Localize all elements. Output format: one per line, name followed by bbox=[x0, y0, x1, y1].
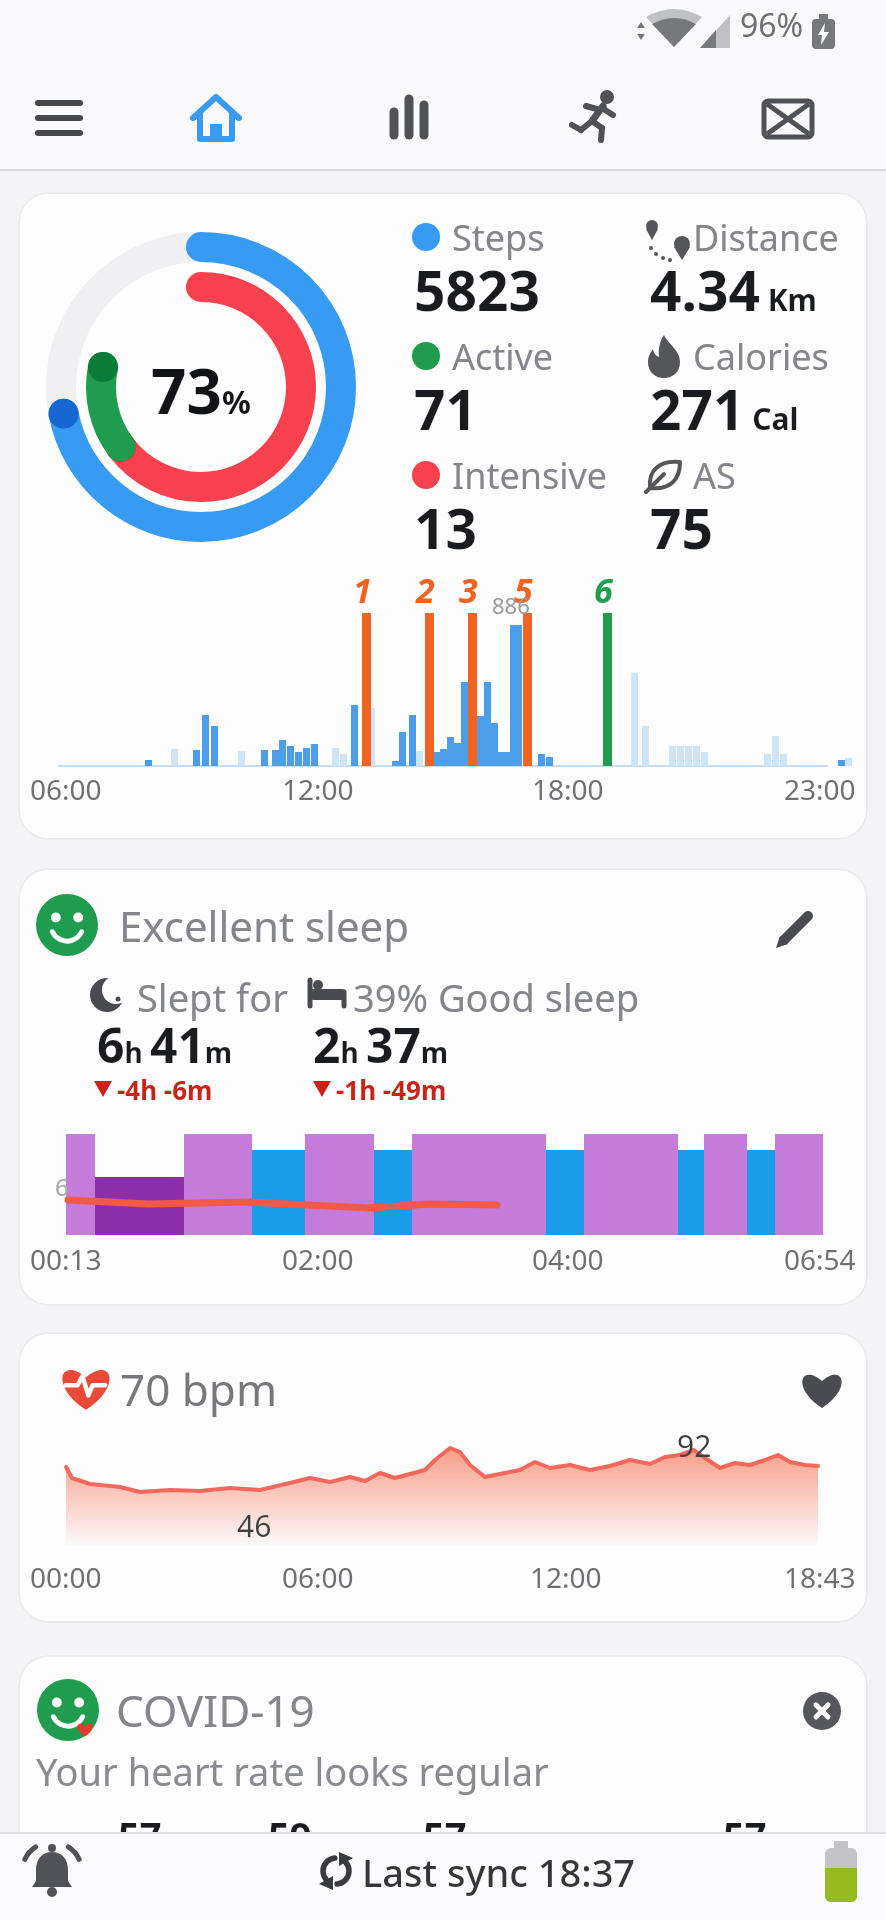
staticText: 70 bpm bbox=[120, 1359, 278, 1419]
button[interactable] bbox=[372, 83, 442, 153]
staticText: Calories bbox=[693, 332, 829, 381]
staticText: 886 bbox=[492, 590, 530, 620]
button[interactable] bbox=[788, 1357, 856, 1425]
staticText: 92 bbox=[677, 1425, 712, 1466]
staticText: 73% bbox=[151, 348, 251, 428]
staticText: 00:13 bbox=[30, 1240, 102, 1278]
button[interactable] bbox=[793, 1682, 851, 1740]
staticText: 02:00 bbox=[282, 1240, 354, 1278]
staticText: 18:00 bbox=[532, 770, 604, 808]
staticText: 2 bbox=[416, 567, 435, 613]
staticText: Slept for bbox=[137, 971, 288, 1023]
staticText: 1 bbox=[353, 567, 372, 613]
staticText: 00:00 bbox=[30, 1558, 102, 1596]
button[interactable] bbox=[25, 89, 95, 159]
staticText: 4.34 Km bbox=[650, 252, 817, 327]
staticText: -4h -6m bbox=[117, 1072, 213, 1107]
staticText: 23:00 bbox=[784, 770, 856, 808]
staticText: 59 bbox=[268, 1809, 312, 1832]
staticText: 46 bbox=[237, 1505, 272, 1546]
staticText: 04:00 bbox=[532, 1240, 604, 1278]
staticText: Intensive bbox=[452, 451, 608, 500]
staticText: 57 bbox=[118, 1809, 162, 1832]
staticText: Last sync 18:37 bbox=[362, 1846, 636, 1898]
staticText: COVID-19 bbox=[116, 1680, 315, 1740]
staticText: 71 bbox=[414, 371, 477, 446]
staticText: 39% Good sleep bbox=[353, 971, 640, 1023]
staticText: 2h 37m bbox=[313, 1012, 449, 1077]
staticText: 6 bbox=[55, 1170, 69, 1203]
staticText: 6h 41m bbox=[97, 1012, 233, 1077]
staticText: -1h -49m bbox=[336, 1072, 447, 1107]
staticText: Distance bbox=[693, 213, 839, 262]
staticText: 5 bbox=[514, 567, 533, 613]
button[interactable] bbox=[763, 888, 835, 960]
button[interactable] bbox=[181, 83, 251, 153]
staticText: AS bbox=[693, 451, 736, 500]
staticText: 06:54 bbox=[784, 1240, 856, 1278]
staticText: 6 bbox=[594, 567, 613, 613]
staticText: 57 bbox=[723, 1809, 767, 1832]
staticText: 271 Cal bbox=[650, 371, 799, 446]
staticText: 13 bbox=[414, 490, 477, 565]
staticText: Steps bbox=[452, 213, 545, 262]
staticText: 12:00 bbox=[530, 1558, 602, 1596]
staticText: 75 bbox=[650, 490, 713, 565]
staticText: 06:00 bbox=[30, 770, 102, 808]
button[interactable]: Excellent sleep bbox=[18, 868, 868, 1306]
staticText: Active bbox=[452, 332, 554, 381]
button[interactable]: 70 bpm bbox=[18, 1332, 868, 1623]
staticText: 57 bbox=[423, 1809, 467, 1832]
button[interactable] bbox=[300, 1838, 590, 1908]
staticText: Excellent sleep bbox=[119, 897, 410, 954]
staticText: 5823 bbox=[414, 252, 540, 327]
button[interactable] bbox=[563, 83, 633, 153]
button[interactable] bbox=[753, 83, 823, 153]
staticText: 06:00 bbox=[282, 1558, 354, 1596]
button[interactable]: COVID-19 bbox=[18, 1655, 868, 1832]
button[interactable] bbox=[22, 1842, 86, 1906]
staticText: 12:00 bbox=[282, 770, 354, 808]
staticText: 96% bbox=[740, 3, 804, 47]
staticText: 18:43 bbox=[784, 1558, 856, 1596]
button[interactable]: 73% bbox=[18, 192, 868, 840]
staticText: Your heart rate looks regular bbox=[36, 1745, 549, 1797]
staticText: 3 bbox=[459, 567, 478, 613]
